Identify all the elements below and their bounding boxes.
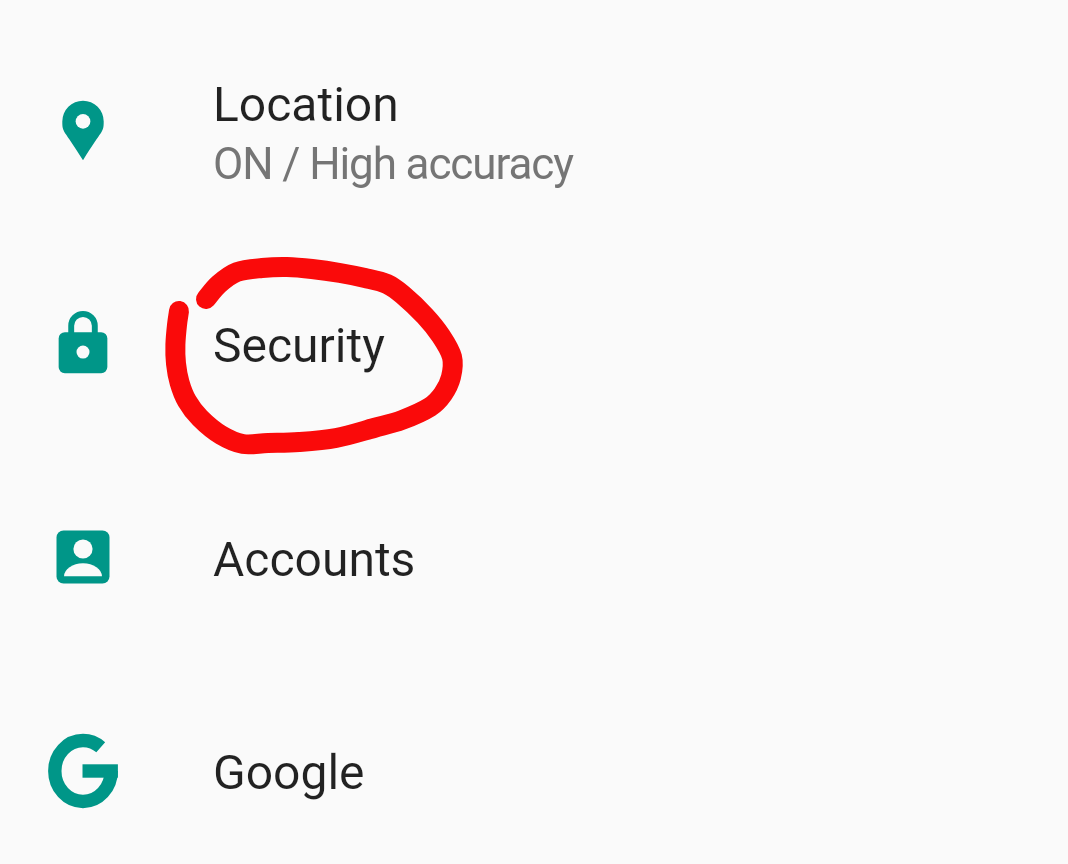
button[interactable]: Location — [0, 24, 1068, 236]
staticText: Google — [213, 744, 365, 800]
other: Google — [41, 729, 125, 813]
other: Accounts — [41, 515, 125, 599]
button[interactable]: Accounts — [0, 450, 1068, 663]
other: Location — [41, 88, 125, 172]
staticText: Security — [213, 317, 385, 373]
button[interactable]: Security — [0, 236, 1068, 449]
staticText: ON / High accuracy — [213, 138, 573, 190]
button[interactable]: Google — [0, 664, 1068, 864]
staticText: Accounts — [213, 531, 416, 587]
other: Security — [41, 300, 125, 384]
staticText: Location — [213, 76, 399, 132]
